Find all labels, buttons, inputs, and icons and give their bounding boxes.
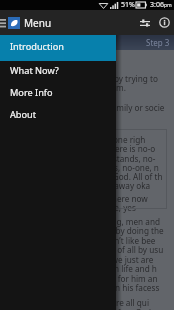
staticText: life, ignoring his instructions for him … — [6, 273, 158, 284]
staticText: righteous, not even one; there is no-o — [11, 143, 156, 154]
staticText: This is serious, because we are all qui — [6, 297, 150, 308]
staticText: living, shaking our tiny fists in his fa… — [6, 282, 160, 293]
staticText: verses 10-12 some text here, yes — [11, 202, 136, 213]
staticText: Romans chapter 3, verses here now — [11, 193, 148, 204]
staticText: have turned away from God by doing the — [6, 225, 164, 236]
staticText: 51% — [121, 0, 135, 10]
staticText: Menu — [24, 16, 52, 30]
staticText: 3:06 — [150, 0, 164, 10]
staticText: one who really understands, no-one, n — [11, 162, 159, 173]
button[interactable]: About — [0, 105, 116, 127]
button[interactable]: More Info — [0, 83, 116, 105]
staticText: It doesn’t matter what our family or soc… — [6, 102, 165, 113]
staticText: Right from the very beginning, men and — [6, 216, 160, 227]
staticText: be good enough to please him. — [6, 82, 126, 93]
staticText: ways, and we just get on with life and h — [6, 263, 157, 274]
staticText: there is no-one who understands, no- — [11, 153, 156, 164]
staticText: More Info — [10, 86, 53, 99]
staticText: being told how to live—least of all by u… — [6, 244, 164, 255]
button[interactable]: Introduction — [0, 35, 116, 61]
staticText: Step 3 — [146, 37, 170, 48]
staticText: one who really truly seeks God. All of t… — [11, 171, 163, 182]
staticText: earn his love or forgiveness by trying t… — [6, 73, 158, 84]
button[interactable]: Settings — [136, 10, 154, 35]
staticText: of all by him in lots of ways we just ar… — [6, 254, 154, 265]
staticText: pm — [164, 2, 172, 9]
button[interactable]: Open navigation drawer — [0, 10, 8, 35]
staticText: As it is written: there is no-one righ — [11, 134, 146, 145]
staticText: About — [10, 108, 37, 121]
staticText: because they are all guilty before God — [6, 307, 152, 310]
staticText: things their own way. We don’t like bee — [6, 235, 156, 246]
staticText: What Now? — [10, 64, 59, 77]
button[interactable]: What Now? — [0, 61, 116, 83]
staticText: they have together turned away oka — [11, 180, 151, 191]
button[interactable]: Info — [154, 10, 174, 35]
staticText: Introduction — [10, 40, 64, 53]
